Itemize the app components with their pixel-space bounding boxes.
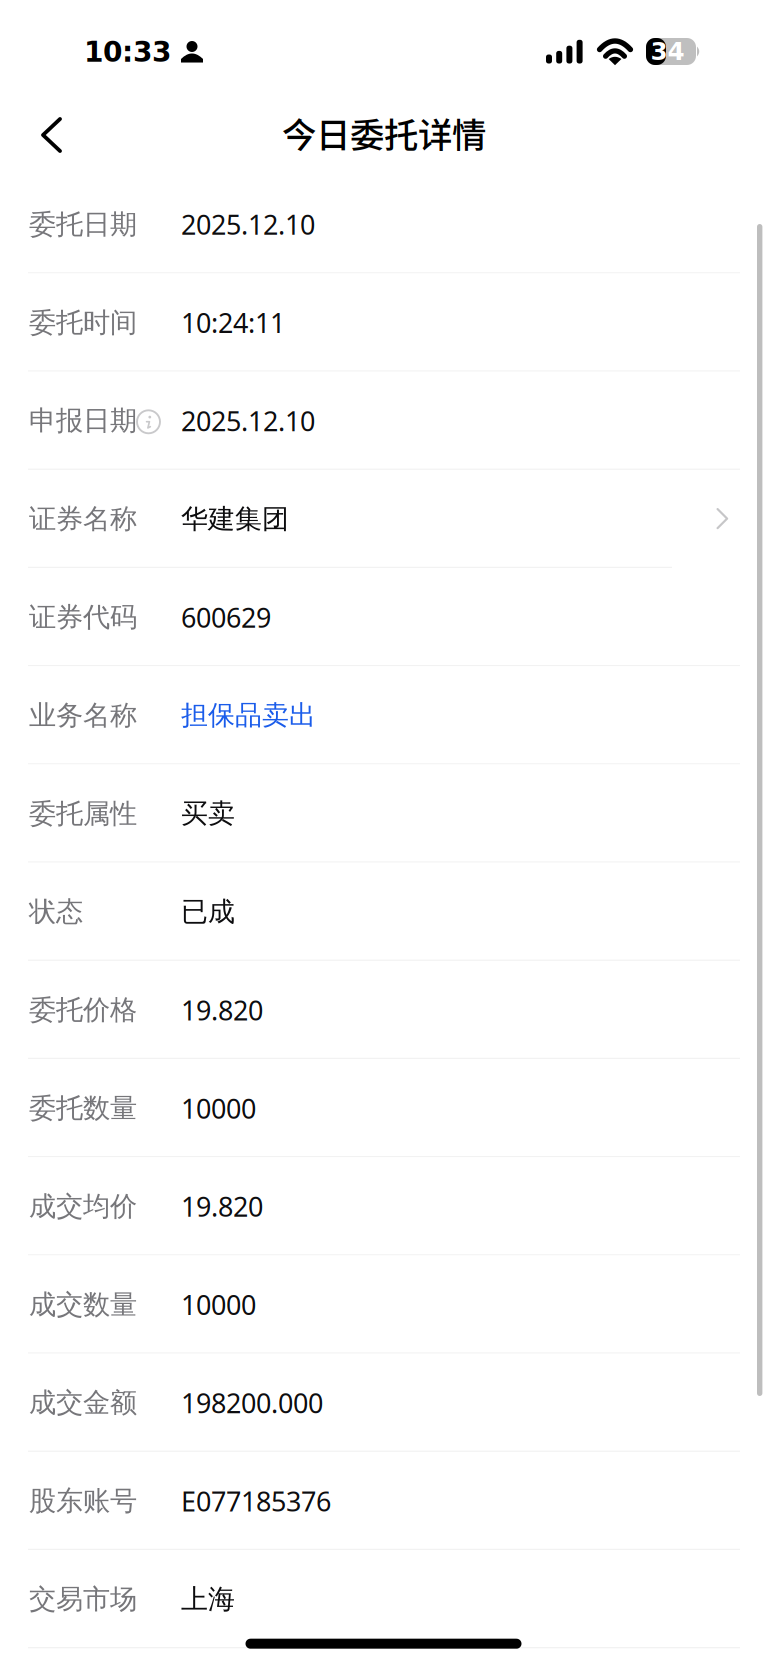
staticText: 198200.000 <box>181 1384 323 1421</box>
staticText: 成交金额 <box>29 1386 137 1420</box>
staticText: 证券代码 <box>29 600 137 634</box>
staticText: 2025.12.10 <box>181 206 315 243</box>
staticText: 委托时间 <box>29 305 137 340</box>
staticText: 状态 <box>29 895 83 929</box>
staticText: 10:24:11 <box>181 304 285 341</box>
staticText: E077185376 <box>181 1483 331 1519</box>
staticText: 申报日期 <box>29 404 137 438</box>
staticText: 已成 <box>181 895 235 929</box>
staticText: 成交均价 <box>29 1189 137 1224</box>
staticText: 上海 <box>181 1582 235 1616</box>
staticText: 业务名称 <box>29 698 137 733</box>
staticText: 2025.12.10 <box>181 402 315 439</box>
staticText: 今日委托详情 <box>282 108 486 157</box>
staticText: 委托属性 <box>29 796 137 831</box>
staticText: 买卖 <box>181 797 235 830</box>
button[interactable]: 证券名称 <box>0 470 768 568</box>
button[interactable]: Back <box>16 100 86 170</box>
staticText: 成交数量 <box>29 1287 137 1322</box>
staticText: 19.820 <box>181 1188 263 1225</box>
staticText: 委托价格 <box>29 993 137 1027</box>
staticText: 10:33 <box>84 36 171 68</box>
staticText: 19.820 <box>181 992 263 1028</box>
staticText: 股东账号 <box>29 1484 137 1518</box>
staticText: 担保品卖出 <box>181 698 316 732</box>
staticText: 华建集团 <box>181 502 289 536</box>
staticText: 10000 <box>181 1090 256 1127</box>
staticText: 委托日期 <box>29 207 137 242</box>
staticText: 600629 <box>181 599 271 636</box>
staticText: 证券名称 <box>29 502 137 536</box>
staticText: 34 <box>650 37 684 66</box>
staticText: 交易市场 <box>29 1582 137 1616</box>
staticText: 委托数量 <box>29 1091 137 1125</box>
staticText: 10000 <box>181 1286 256 1323</box>
